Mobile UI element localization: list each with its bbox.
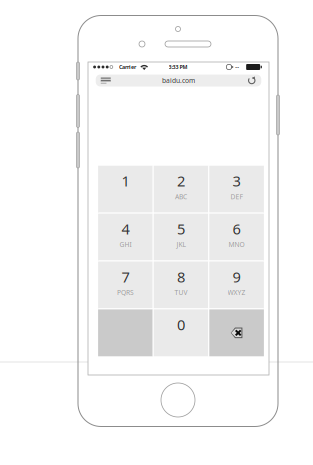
- button[interactable]: 3: [209, 166, 264, 213]
- staticText: PQRS: [117, 288, 134, 297]
- staticText: 3: [233, 171, 241, 191]
- staticText: 2: [177, 171, 185, 191]
- staticText: 6: [233, 219, 241, 239]
- button[interactable]: 8: [154, 261, 208, 308]
- staticText: 1: [121, 171, 129, 191]
- staticText: 4: [121, 219, 129, 239]
- staticText: 5: [177, 219, 185, 239]
- staticText: 8: [177, 267, 185, 286]
- staticText: TUV: [174, 288, 187, 297]
- button[interactable]: 6: [209, 214, 264, 260]
- button[interactable]: Menu: [101, 74, 123, 86]
- staticText: 7: [121, 267, 129, 286]
- button[interactable]: 2: [154, 166, 208, 213]
- staticText: GHI: [119, 240, 131, 249]
- button[interactable]: 4: [98, 214, 153, 260]
- button[interactable]: 0: [154, 309, 208, 356]
- staticText: 3:33 PM: [168, 63, 187, 71]
- button[interactable]: 9: [209, 261, 264, 308]
- staticText: DEF: [231, 192, 243, 201]
- staticText: Carrier: [119, 63, 136, 71]
- staticText: baidu.com: [162, 76, 195, 85]
- button[interactable]: 1: [98, 166, 153, 213]
- staticText: 0: [177, 315, 185, 334]
- staticText: 9: [233, 267, 241, 286]
- staticText: JKL: [176, 240, 185, 249]
- button[interactable]: Delete: [209, 309, 264, 356]
- button[interactable]: 5: [154, 214, 208, 260]
- staticText: WXYZ: [228, 288, 246, 297]
- button[interactable]: Reload: [243, 74, 261, 86]
- button[interactable]: Blank: [98, 309, 153, 356]
- staticText: --: [235, 63, 239, 71]
- staticText: ABC: [175, 192, 187, 201]
- staticText: MNO: [229, 240, 245, 249]
- button[interactable]: 7: [98, 261, 153, 308]
